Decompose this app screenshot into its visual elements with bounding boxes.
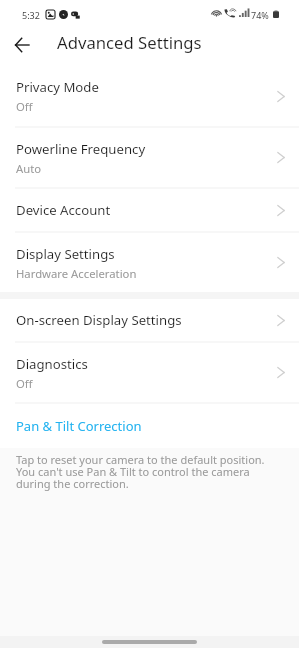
staticText: Advanced Settings — [57, 31, 202, 54]
button[interactable]: Powerline Frequency — [0, 128, 299, 187]
staticText: 5:32 — [22, 9, 40, 21]
button[interactable]: On-screen Display Settings — [0, 299, 299, 341]
button[interactable]: Privacy Mode — [0, 66, 299, 126]
staticText: Hardware Acceleration — [16, 266, 137, 281]
button[interactable]: Pan & Tilt Correction — [0, 404, 299, 448]
staticText: Privacy Mode — [16, 78, 99, 96]
button[interactable]: Device Account — [0, 189, 299, 231]
staticText: Off — [16, 376, 33, 391]
staticText: Display Settings — [16, 245, 115, 263]
staticText: Off — [16, 99, 33, 114]
button[interactable]: Back — [8, 31, 36, 59]
button[interactable]: Diagnostics — [0, 343, 299, 402]
staticText: Diagnostics — [16, 355, 88, 373]
staticText: Pan & Tilt Correction — [16, 417, 142, 435]
staticText: On-screen Display Settings — [16, 311, 182, 329]
staticText: Auto — [16, 161, 42, 176]
staticText: Device Account — [16, 201, 111, 219]
staticText: 74% — [251, 9, 269, 21]
button[interactable]: Display Settings — [0, 233, 299, 292]
staticText: Powerline Frequency — [16, 140, 146, 158]
staticText: Tap to reset your camera to the default … — [16, 452, 283, 491]
